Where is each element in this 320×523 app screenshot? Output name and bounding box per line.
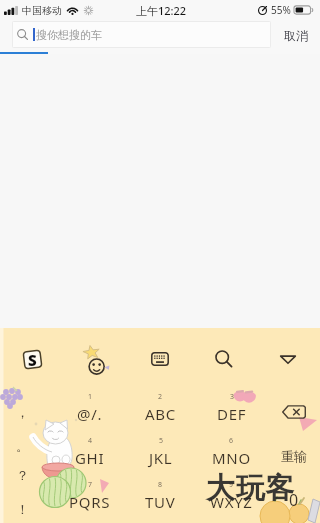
button[interactable]: 4 [55,435,125,479]
staticText: 上午12:22 [136,3,187,18]
staticText: 重输 [281,448,307,464]
staticText: ABC [145,404,176,424]
staticText: DEF [217,404,247,424]
staticText: S [28,350,37,370]
button[interactable]: Punctuation [0,479,55,523]
staticText: 6 [229,436,234,446]
staticText: 2 [158,392,163,402]
button[interactable]: 搜你想搜的车 [12,21,271,48]
button[interactable]: Emoji [64,328,128,390]
staticText: WXYZ [210,492,253,512]
button[interactable]: 2 [125,390,196,435]
staticText: 3 [230,392,235,402]
button[interactable]: Collapse keyboard [256,328,320,390]
button[interactable]: 3 [196,390,267,435]
button[interactable]: 5 [125,435,196,479]
staticText: 4 [88,436,93,446]
staticText: 。 [16,438,29,454]
staticText: GHI [75,448,105,468]
button[interactable]: Punctuation [0,390,55,435]
staticText: 5 [159,436,164,446]
staticText: 9 [229,480,234,490]
button[interactable]: 取消 [281,24,311,47]
staticText: 1 [88,392,93,402]
staticText: PQRS [69,492,111,512]
staticText: @/. [77,404,103,424]
button[interactable]: Keyboard layout [128,328,192,390]
staticText: 取消 [284,28,308,43]
staticText: JKL [149,448,173,468]
button[interactable]: Sogou input method [0,328,64,390]
button[interactable]: Re-enter [267,435,320,479]
button[interactable]: 6 [196,435,267,479]
staticText: ， [16,404,29,420]
button[interactable]: 8 [125,479,196,523]
staticText: 7 [88,480,93,490]
staticText: TUV [145,492,176,512]
button[interactable]: 9 [196,479,267,523]
staticText: 55% [271,3,291,17]
staticText: 8 [158,480,163,490]
button[interactable]: Search [192,328,256,390]
staticText: 中国移动 [22,4,62,17]
staticText: 大玩客 [206,470,296,507]
staticText: MNO [212,448,251,468]
button[interactable]: 1 [55,390,125,435]
staticText: ？ [16,467,29,483]
staticText: 搜你想搜的车 [36,28,102,42]
staticText: 0 [289,489,299,511]
button[interactable]: Delete [267,390,320,435]
button[interactable]: Zero [267,479,320,523]
staticText: ！ [16,501,29,517]
button[interactable]: 7 [55,479,125,523]
button[interactable]: Punctuation [0,435,55,479]
